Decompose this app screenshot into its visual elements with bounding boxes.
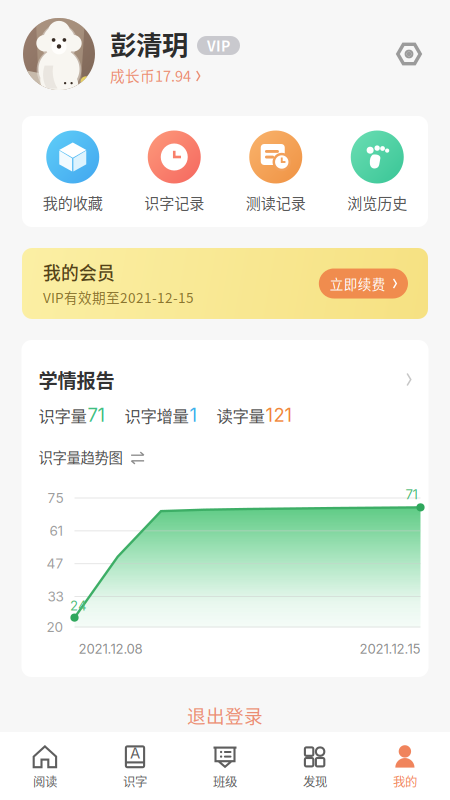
staticText: 1	[189, 404, 197, 426]
staticText: 61	[49, 523, 63, 539]
staticText: 识字增量	[124, 403, 188, 427]
staticText: VIP	[207, 35, 230, 56]
staticText: 浏览历史	[347, 192, 407, 213]
button[interactable]: 测读记录	[225, 116, 326, 227]
staticText: 我的会员	[43, 259, 115, 285]
button[interactable]: 我的	[360, 732, 450, 800]
staticText: 读字量	[216, 403, 264, 427]
staticText: 阅读	[33, 772, 57, 790]
staticText: 24	[70, 598, 87, 614]
staticText: 我的收藏	[43, 192, 103, 213]
staticText: 2021.12.15	[359, 641, 420, 657]
staticText: 71	[405, 486, 417, 502]
staticText: 我的	[393, 772, 417, 790]
staticText: 121	[265, 404, 292, 426]
staticText: 成长币17.94	[110, 65, 191, 86]
staticText: 识字记录	[144, 192, 204, 213]
button[interactable]: 发现	[270, 732, 360, 800]
button[interactable]: 我的收藏	[22, 116, 123, 227]
staticText: 33	[47, 588, 63, 605]
staticText: 班级	[213, 772, 237, 790]
button[interactable]: 阅读	[0, 732, 90, 800]
button[interactable]: A	[90, 732, 180, 800]
staticText: 立即续费	[330, 274, 386, 293]
button[interactable]: 浏览历史	[326, 116, 428, 227]
button[interactable]: 识字记录	[123, 116, 225, 227]
staticText: 71	[87, 404, 105, 426]
staticText: 测读记录	[246, 192, 306, 213]
button[interactable]: 退出登录	[0, 698, 450, 732]
staticText: 75	[47, 490, 63, 506]
staticText: 彭清玥	[110, 24, 188, 63]
button[interactable]: 班级	[180, 732, 270, 800]
button[interactable]: 立即续费	[319, 268, 408, 298]
staticText: 20	[46, 619, 63, 635]
staticText: 发现	[303, 772, 327, 790]
staticText: 47	[46, 555, 63, 572]
staticText: 识字	[123, 772, 147, 790]
button[interactable]: 设置	[394, 39, 424, 69]
staticText: 退出登录	[187, 701, 263, 728]
staticText: VIP有效期至2021-12-15	[43, 287, 194, 307]
staticText: 2021.12.08	[78, 641, 142, 657]
button[interactable]: 学情报告	[38, 366, 411, 393]
staticText: 识字量	[38, 403, 86, 427]
staticText: 学情报告	[38, 366, 114, 393]
staticText: 识字量趋势图	[38, 447, 122, 467]
staticText: A	[130, 744, 140, 762]
